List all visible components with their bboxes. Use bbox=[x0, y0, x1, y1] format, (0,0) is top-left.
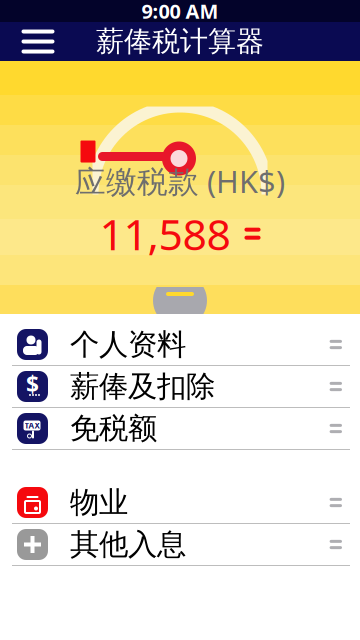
staticText: 应缴税款 (HK$) bbox=[75, 161, 285, 201]
button[interactable]: 11,588 bbox=[85, 201, 274, 268]
staticText: 薪俸税计算器 bbox=[96, 24, 264, 59]
staticText: 11,588 bbox=[99, 205, 230, 262]
button[interactable]: Menu bbox=[10, 22, 66, 61]
button[interactable]: TAX bbox=[0, 408, 360, 449]
button[interactable]: Collapse summary bbox=[153, 287, 207, 314]
button[interactable]: 个人资料 bbox=[0, 324, 360, 365]
staticText: 9:00 AM bbox=[141, 0, 218, 24]
staticText: 物业 bbox=[70, 484, 128, 520]
button[interactable]: 物业 bbox=[0, 482, 360, 523]
staticText: 其他入息 bbox=[70, 526, 186, 562]
staticText: 薪俸及扣除 bbox=[70, 368, 215, 404]
button[interactable]: $ bbox=[0, 366, 360, 407]
staticText: TAX bbox=[24, 420, 39, 431]
staticText: 个人资料 bbox=[70, 326, 186, 362]
button[interactable]: 其他入息 bbox=[0, 524, 360, 565]
staticText: 免税额 bbox=[70, 410, 157, 446]
staticText: $ bbox=[26, 369, 39, 399]
